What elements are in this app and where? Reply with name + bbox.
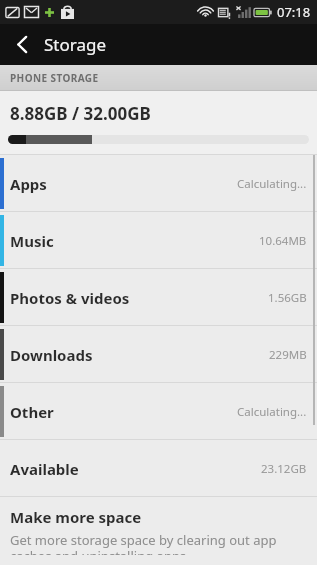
staticText: Photos & videos — [10, 288, 268, 308]
staticText: Downloads — [10, 345, 269, 365]
button[interactable]: Apps — [0, 155, 317, 212]
staticText: Storage — [44, 33, 107, 56]
staticText: Music — [10, 231, 259, 251]
staticText: 229MB — [269, 347, 307, 363]
staticText: Apps — [10, 174, 237, 194]
button[interactable]: Other — [0, 383, 317, 440]
staticText: 23.12GB — [261, 461, 307, 477]
staticText: 07:18 — [277, 3, 311, 21]
staticText: 10.64MB — [259, 233, 307, 249]
staticText: Calculating... — [237, 404, 307, 420]
button[interactable]: Available — [0, 440, 317, 497]
staticText: PHONE STORAGE — [10, 71, 99, 85]
staticText: Available — [10, 459, 261, 479]
button[interactable]: Downloads — [0, 326, 317, 383]
staticText: Get more storage space by clearing out a… — [10, 531, 307, 555]
staticText: 1.56GB — [268, 290, 307, 306]
staticText: 8.88GB / 32.00GB — [10, 102, 151, 125]
staticText: Other — [10, 402, 237, 422]
staticText: Make more space — [10, 507, 142, 527]
staticText: Calculating... — [237, 176, 307, 192]
button[interactable]: Make more space — [0, 497, 317, 565]
button[interactable]: Music — [0, 212, 317, 269]
button[interactable]: Back — [0, 24, 44, 65]
button[interactable]: Photos & videos — [0, 269, 317, 326]
